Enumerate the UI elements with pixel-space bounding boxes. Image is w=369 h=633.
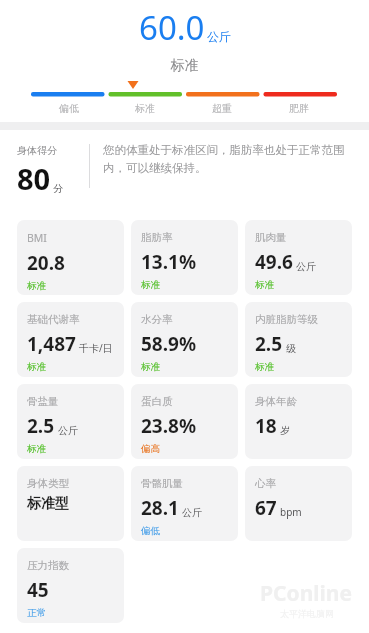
staticText: 标准 <box>27 361 46 373</box>
staticText: 标准型 <box>27 495 69 513</box>
staticText: 23.8% <box>141 413 197 439</box>
staticText: 基础代谢率 <box>27 313 80 326</box>
staticText: 公斤 <box>58 424 78 437</box>
staticText: 分 <box>53 182 63 195</box>
staticText: 身体类型 <box>27 477 69 490</box>
staticText: 45 <box>27 577 49 603</box>
staticText: 58.9% <box>141 331 197 357</box>
staticText: 偏高 <box>141 443 160 455</box>
button[interactable]: 水分率 <box>131 302 238 377</box>
staticText: 太平洋电脑网 <box>280 608 334 619</box>
staticText: bpm <box>280 505 302 519</box>
button[interactable]: 脂肪率 <box>131 220 238 295</box>
staticText: 标准 <box>255 279 274 291</box>
staticText: 正常 <box>27 607 46 619</box>
button[interactable]: 蛋白质 <box>131 384 238 459</box>
staticText: 60.0 <box>139 5 205 50</box>
staticText: 公斤 <box>296 260 316 273</box>
staticText: 超重 <box>212 102 232 115</box>
button[interactable]: BMI <box>17 220 124 295</box>
button[interactable]: 骨骼肌量 <box>131 466 238 541</box>
button[interactable]: 肌肉量 <box>245 220 352 295</box>
staticText: 蛋白质 <box>141 395 173 408</box>
staticText: 标准 <box>135 102 155 115</box>
staticText: 13.1% <box>141 249 197 275</box>
staticText: 28.1 <box>141 495 179 521</box>
staticText: PConline <box>260 579 353 608</box>
staticText: 20.8 <box>27 250 65 276</box>
staticText: 67 <box>255 495 277 521</box>
staticText: 级 <box>286 342 296 355</box>
staticText: 肥胖 <box>289 102 309 115</box>
staticText: 骨骼肌量 <box>141 477 183 490</box>
staticText: 标准 <box>27 280 46 292</box>
staticText: 2.5 <box>27 413 55 439</box>
button[interactable]: 身体年龄 <box>245 384 352 459</box>
staticText: 2.5 <box>255 331 283 357</box>
staticText: 49.6 <box>255 249 293 275</box>
staticText: 您的体重处于标准区间，脂肪率也处于正常范围内，可以继续保持。 <box>103 143 353 176</box>
button[interactable]: 压力指数 <box>17 548 124 623</box>
staticText: 公斤 <box>182 506 202 519</box>
button[interactable]: 内脏脂肪等级 <box>245 302 352 377</box>
button[interactable]: 基础代谢率 <box>17 302 124 377</box>
staticText: 标准 <box>141 279 160 291</box>
staticText: 心率 <box>255 477 276 490</box>
button[interactable]: 心率 <box>245 466 352 541</box>
staticText: 标准 <box>0 57 369 75</box>
staticText: 内脏脂肪等级 <box>255 313 318 326</box>
button[interactable]: 身体类型 <box>17 466 124 541</box>
staticText: 标准 <box>255 361 274 373</box>
staticText: 偏低 <box>59 102 79 115</box>
staticText: 标准 <box>141 361 160 373</box>
staticText: 18 <box>255 413 277 439</box>
staticText: 偏低 <box>141 525 160 537</box>
staticText: 千卡/日 <box>79 341 113 355</box>
staticText: 骨盐量 <box>27 395 59 408</box>
staticText: 1,487 <box>27 331 76 357</box>
staticText: 水分率 <box>141 313 173 326</box>
staticText: BMI <box>27 231 47 245</box>
staticText: 身体年龄 <box>255 395 297 408</box>
staticText: 公斤 <box>207 29 231 44</box>
staticText: 脂肪率 <box>141 231 173 244</box>
staticText: 80 <box>17 159 51 198</box>
staticText: 压力指数 <box>27 559 69 572</box>
staticText: 岁 <box>280 424 290 437</box>
button[interactable]: 骨盐量 <box>17 384 124 459</box>
staticText: 肌肉量 <box>255 231 287 244</box>
staticText: 身体得分 <box>17 144 57 157</box>
staticText: 标准 <box>27 443 46 455</box>
